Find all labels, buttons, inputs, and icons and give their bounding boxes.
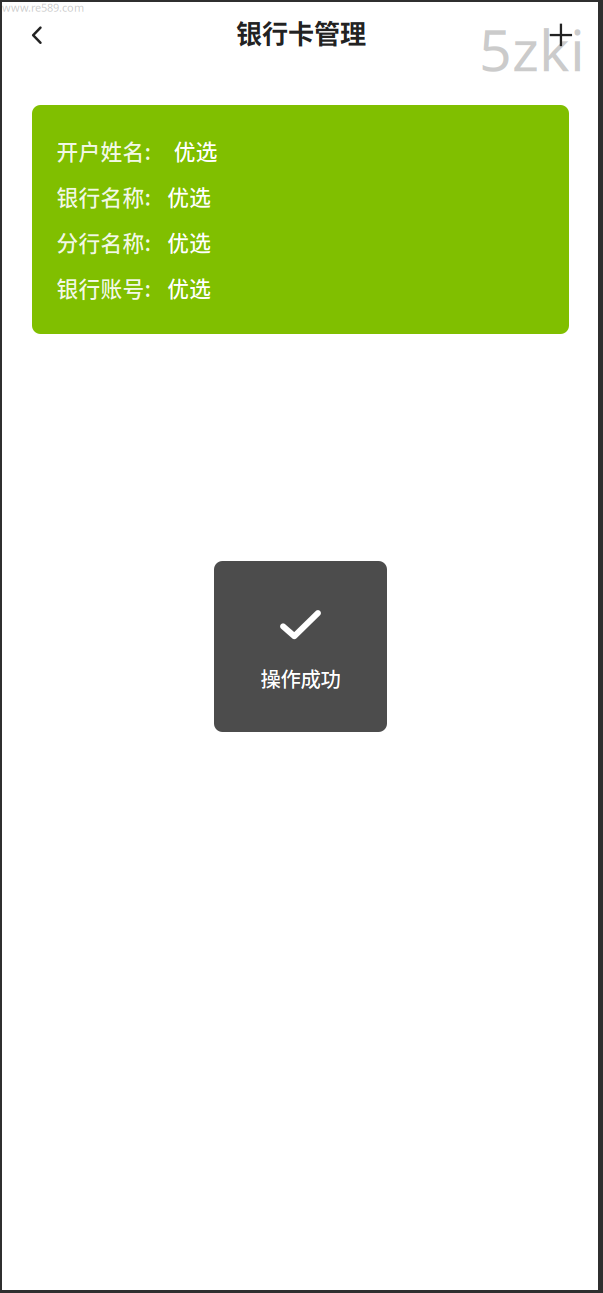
staticText: 操作成功	[260, 663, 340, 693]
staticText: 优选	[167, 272, 211, 303]
staticText: 银行卡管理	[236, 13, 366, 51]
button[interactable]: 添加银行卡	[533, 7, 589, 63]
staticText: www.re589.com	[2, 0, 84, 15]
staticText: 开户姓名:	[56, 135, 150, 166]
staticText: 5zki	[479, 10, 585, 88]
staticText: 银行账号:	[56, 272, 150, 303]
button[interactable]: 返回	[9, 7, 65, 63]
staticText: 分行名称:	[56, 226, 150, 258]
staticText: 银行名称:	[56, 180, 150, 212]
staticText: 优选	[167, 226, 211, 258]
staticText: 优选	[167, 180, 211, 212]
staticText: 优选	[174, 135, 218, 166]
